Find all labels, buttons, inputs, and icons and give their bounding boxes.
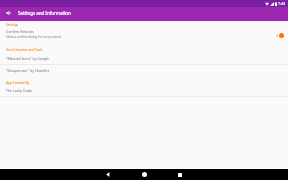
button[interactable]: Confirm Reboots [0,28,288,40]
button[interactable]: "libsuperuser" by Chainfire [0,66,288,75]
staticText: Settings and Information [18,10,71,16]
staticText: Confirm Reboots [6,29,34,34]
staticText: Used Libraries and Tools [6,48,43,52]
button[interactable]: "Material Icons" by Google [0,54,288,63]
button[interactable]: The Lucky Coder [0,86,288,95]
staticText: Show a confirm dialog for every reboot [6,35,61,39]
button[interactable]: Navigate up [0,7,16,21]
staticText: "Material Icons" by Google [6,56,49,61]
staticText: Settings [6,23,19,27]
staticText: The Lucky Coder [6,88,33,93]
button[interactable]: Home [126,169,162,180]
button[interactable]: Recent apps [162,169,198,180]
staticText: App Created By [6,81,30,85]
button[interactable]: Back [90,169,126,180]
staticText: 7:44 [278,1,286,6]
staticText: "libsuperuser" by Chainfire [6,68,50,73]
